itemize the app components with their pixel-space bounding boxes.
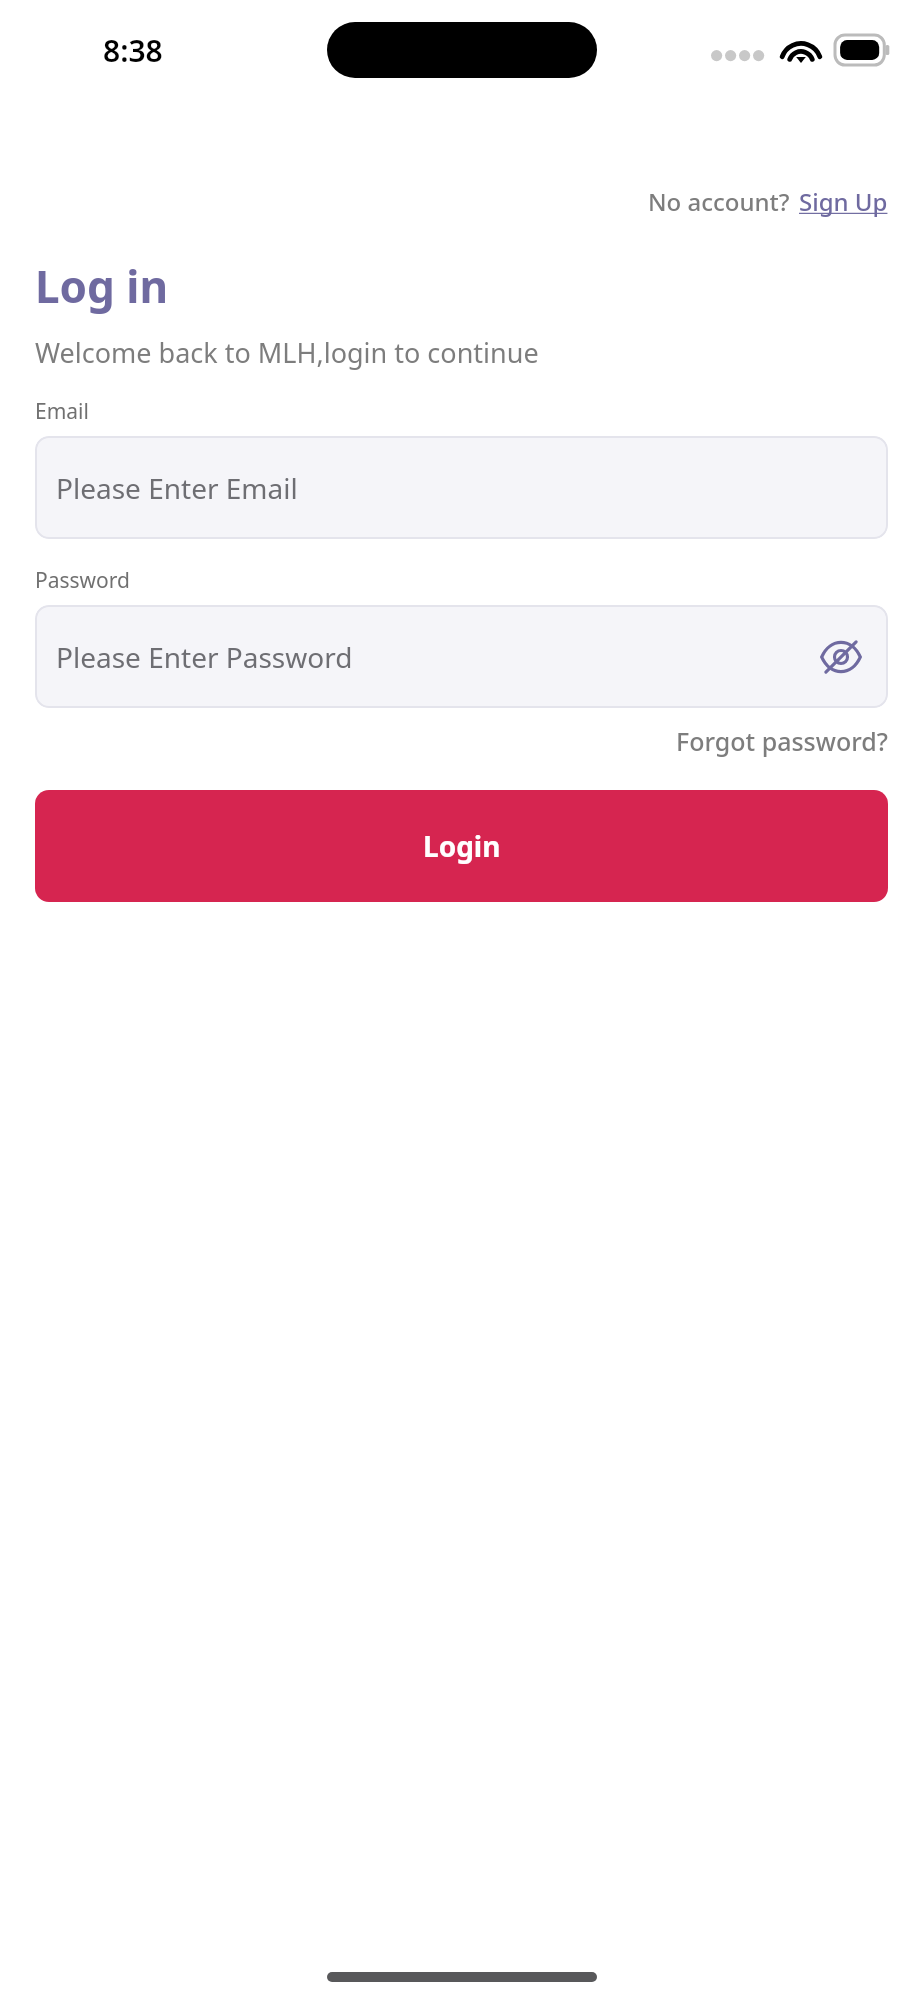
staticText: Welcome back to MLH,login to continue [35, 334, 539, 371]
staticText: Log in [35, 256, 169, 316]
staticText: Please Enter Password [56, 638, 353, 676]
staticText: Login [423, 827, 501, 865]
staticText: Sign Up [799, 185, 888, 218]
button[interactable]: Show password [814, 630, 868, 684]
staticText: Email [35, 397, 89, 426]
staticText: Password [35, 566, 130, 595]
button[interactable]: Please Enter Email [35, 436, 888, 539]
staticText: No account? [648, 185, 790, 218]
button[interactable]: Sign Up [799, 185, 888, 218]
button[interactable]: Forgot password? [676, 724, 888, 758]
button[interactable]: Please Enter Password [35, 605, 888, 708]
staticText: Forgot password? [676, 724, 888, 758]
button[interactable]: Login [35, 790, 888, 902]
staticText: Please Enter Email [56, 469, 298, 507]
staticText: 8:38 [103, 30, 163, 71]
